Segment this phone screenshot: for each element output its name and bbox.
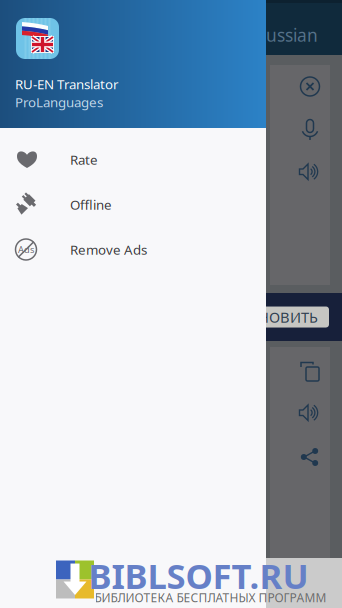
- staticText: Offline: [70, 196, 112, 213]
- button[interactable]: Offline: [0, 182, 266, 227]
- staticText: Remove Ads: [70, 241, 147, 258]
- staticText: Ads: [18, 243, 34, 256]
- button[interactable]: Rate: [0, 137, 266, 182]
- staticText: Rate: [70, 151, 98, 168]
- staticText: Russian: [255, 23, 318, 46]
- button[interactable]: Clear text: [290, 75, 330, 98]
- button[interactable]: Speak source: [290, 151, 330, 193]
- button[interactable]: Ads: [0, 227, 266, 272]
- staticText: УСТАНОВИТЬ: [225, 307, 318, 327]
- button[interactable]: Voice input: [290, 108, 330, 151]
- button[interactable]: Share translation: [290, 435, 330, 479]
- staticText: ProLanguages: [15, 93, 103, 111]
- button[interactable]: Speak translation: [290, 392, 330, 434]
- staticText: RU-EN Translator: [15, 75, 119, 93]
- button[interactable]: Copy translation: [290, 353, 330, 390]
- staticText: BIBLSOFT.RU: [88, 552, 308, 598]
- staticText: БИБЛИОТЕКА БЕСПЛАТНЫХ ПРОГРАММ: [94, 589, 326, 605]
- button[interactable]: УСТАНОВИТЬ: [214, 306, 329, 327]
